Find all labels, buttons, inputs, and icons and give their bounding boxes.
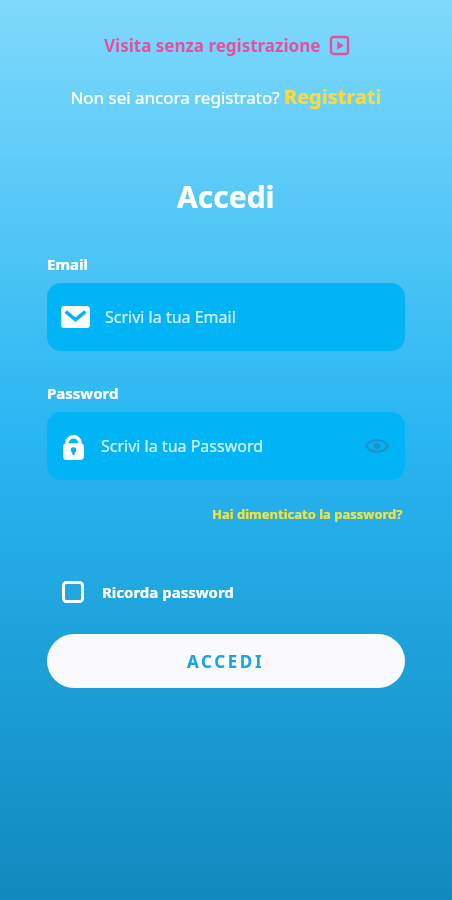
button[interactable]: Ricorda password (58, 575, 238, 609)
staticText: Non sei ancora registrato? Registrati (70, 83, 382, 110)
button[interactable]: Non sei ancora registrato? Registrati (0, 80, 452, 113)
button[interactable]: Show password (363, 436, 391, 456)
staticText: ACCEDI (187, 650, 265, 673)
button[interactable]: Scrivi la tua Password (47, 412, 405, 480)
staticText: Accedi (177, 176, 275, 217)
other: Visit without registration (330, 36, 349, 55)
staticText: Visita senza registrazione (104, 34, 321, 57)
staticText: Password (47, 383, 119, 403)
button[interactable]: Visita senza registrazione (0, 30, 452, 61)
button[interactable]: ACCEDI (47, 634, 405, 688)
button[interactable]: Scrivi la tua Email (47, 283, 405, 351)
staticText: Hai dimenticato la password? (212, 505, 403, 523)
staticText: Email (47, 254, 88, 274)
staticText: Ricorda password (102, 582, 234, 602)
button[interactable]: Hai dimenticato la password? (208, 501, 407, 527)
staticText: Scrivi la tua Email (105, 306, 236, 328)
staticText: Scrivi la tua Password (101, 435, 264, 457)
